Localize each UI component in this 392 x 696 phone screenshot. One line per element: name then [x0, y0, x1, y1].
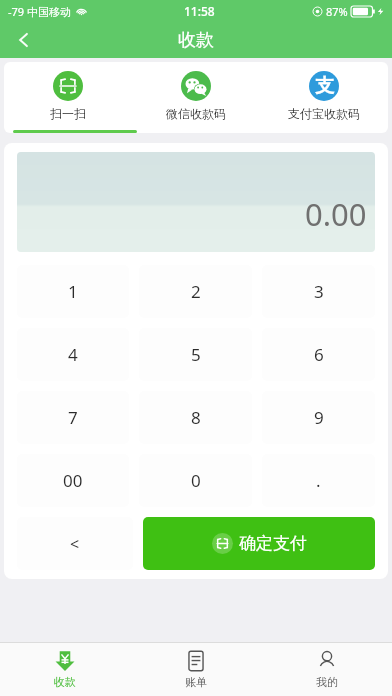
button[interactable]: 3 [262, 265, 375, 318]
staticText: 1 [68, 280, 78, 303]
button[interactable]: 微信收款码 [132, 62, 260, 130]
staticText: 2 [191, 280, 201, 303]
button[interactable]: 9 [262, 391, 375, 444]
button[interactable]: 确定支付 [143, 517, 375, 570]
button[interactable]: 0.00 [17, 152, 375, 252]
staticText: 9 [314, 406, 324, 429]
button[interactable]: 账单 [130, 643, 261, 696]
staticText: 支付宝收款码 [288, 106, 360, 121]
button[interactable]: 1 [17, 265, 129, 318]
staticText: 收款 [54, 675, 76, 689]
staticText: 收款 [178, 29, 214, 52]
staticText: 账单 [185, 675, 207, 689]
staticText: 3 [314, 280, 324, 303]
button[interactable]: Back [6, 22, 42, 58]
staticText: 00 [63, 469, 83, 492]
staticText: 我的 [316, 675, 338, 689]
button[interactable]: . [262, 454, 375, 507]
button[interactable]: 00 [17, 454, 129, 507]
button[interactable]: 收款 [0, 643, 130, 696]
staticText: 7 [68, 406, 78, 429]
staticText: -79 中国移动 [8, 4, 71, 19]
staticText: 0.00 [305, 193, 367, 235]
staticText: 11:58 [184, 3, 215, 19]
staticText: 87% [326, 4, 348, 19]
button[interactable]: 7 [17, 391, 129, 444]
staticText: 6 [314, 343, 324, 366]
button[interactable]: 5 [139, 328, 252, 381]
button[interactable]: 6 [262, 328, 375, 381]
staticText: 扫一扫 [50, 106, 86, 121]
staticText: 微信收款码 [166, 106, 226, 121]
button[interactable]: 2 [139, 265, 252, 318]
button[interactable]: 4 [17, 328, 129, 381]
staticText: 8 [191, 406, 201, 429]
button[interactable]: 扫一扫 [4, 62, 132, 130]
staticText: . [316, 469, 321, 492]
staticText: < [70, 533, 80, 555]
button[interactable]: 我的 [261, 643, 392, 696]
button[interactable]: 支 [260, 62, 388, 130]
staticText: 5 [191, 343, 201, 366]
staticText: 0 [191, 469, 201, 492]
staticText: 4 [68, 343, 78, 366]
button[interactable]: Delete [17, 517, 133, 570]
staticText: 确定支付 [239, 533, 307, 554]
staticText: 支 [315, 74, 334, 98]
button[interactable]: 0 [139, 454, 252, 507]
button[interactable]: 8 [139, 391, 252, 444]
